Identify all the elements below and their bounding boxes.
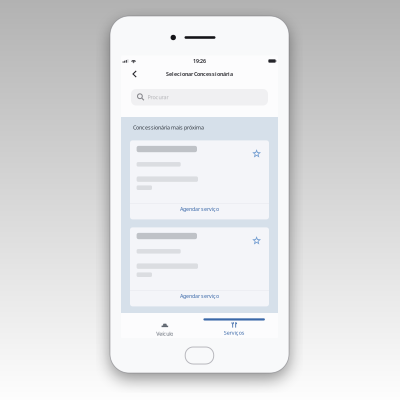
button[interactable]: Agendar serviço — [130, 204, 269, 219]
button[interactable]: Serviços — [199, 313, 269, 338]
button[interactable]: Agendar serviço — [130, 291, 269, 306]
staticText: Procurar — [147, 94, 168, 101]
staticText: Agendar serviço — [180, 292, 219, 300]
staticText: Selecionar Concessionária — [166, 70, 233, 78]
button[interactable]: Veículo — [130, 313, 199, 338]
staticText: 19:26 — [193, 57, 206, 65]
staticText: Concessionária mais próxima — [133, 124, 204, 131]
staticText: Veículo — [156, 330, 173, 337]
staticText: Serviços — [224, 329, 245, 336]
button[interactable]: Voltar — [121, 67, 144, 81]
button[interactable]: Procurar — [131, 89, 268, 105]
staticText: Agendar serviço — [180, 205, 219, 213]
